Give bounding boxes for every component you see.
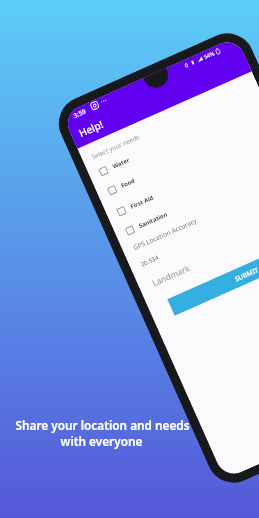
staticText: 20.534 [139, 254, 160, 269]
staticText: GPS Location Accuracy [132, 216, 198, 252]
staticText: with everyone [15, 433, 188, 449]
staticText: Help! [76, 117, 106, 140]
staticText: Water [111, 156, 131, 171]
staticText: Select your needs [90, 132, 141, 160]
staticText: Share your location and needs [15, 417, 190, 433]
button[interactable]: Water [98, 154, 132, 178]
button[interactable]: Sanitation [124, 208, 170, 238]
staticText: Landmark [150, 262, 191, 288]
button[interactable]: Food [106, 175, 137, 197]
staticText: 0 [183, 61, 190, 69]
staticText: Sanitation [138, 210, 169, 230]
staticText: 54% [202, 49, 215, 60]
staticText: SUBMIT [233, 265, 259, 284]
staticText: Food [120, 176, 137, 190]
button[interactable]: First Aid [115, 191, 156, 218]
staticText: 3:59 [72, 107, 87, 120]
button[interactable]: SUBMIT [167, 233, 259, 316]
staticText: First Aid [129, 193, 155, 211]
